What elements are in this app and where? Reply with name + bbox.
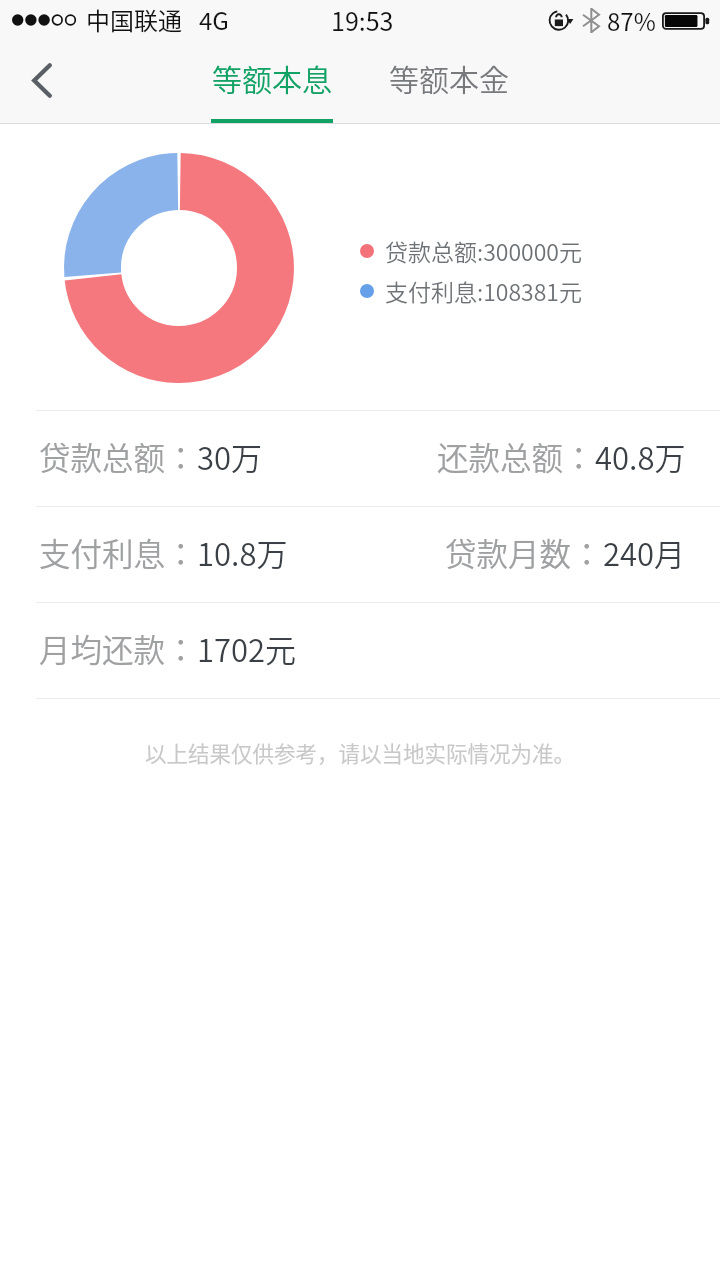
button[interactable]: 等额本金	[369, 45, 529, 124]
staticText: 贷款总额:300000元	[385, 234, 582, 267]
staticText: 87%	[607, 3, 656, 38]
staticText: 40.8万	[595, 434, 686, 479]
staticText: 贷款月数：	[445, 529, 603, 575]
staticText: 30万	[197, 434, 263, 479]
staticText: 中国联通	[86, 2, 182, 37]
staticText: 等额本息	[212, 56, 332, 99]
button[interactable]: 等额本息	[192, 45, 352, 124]
button[interactable]: Back	[6, 48, 78, 112]
staticText: 1702元	[197, 626, 297, 671]
staticText: 19:53	[331, 2, 394, 38]
staticText: 月均还款：	[39, 625, 197, 671]
staticText: 240月	[603, 530, 686, 575]
staticText: 4G	[199, 2, 229, 37]
staticText: 支付利息:108381元	[385, 274, 582, 307]
staticText: 贷款总额：	[39, 433, 197, 479]
staticText: 支付利息：	[39, 529, 197, 575]
staticText: 以上结果仅供参考，请以当地实际情况为准。	[0, 737, 720, 768]
staticText: 10.8万	[197, 530, 288, 575]
staticText: 还款总额：	[437, 433, 595, 479]
staticText: 等额本金	[389, 56, 509, 99]
